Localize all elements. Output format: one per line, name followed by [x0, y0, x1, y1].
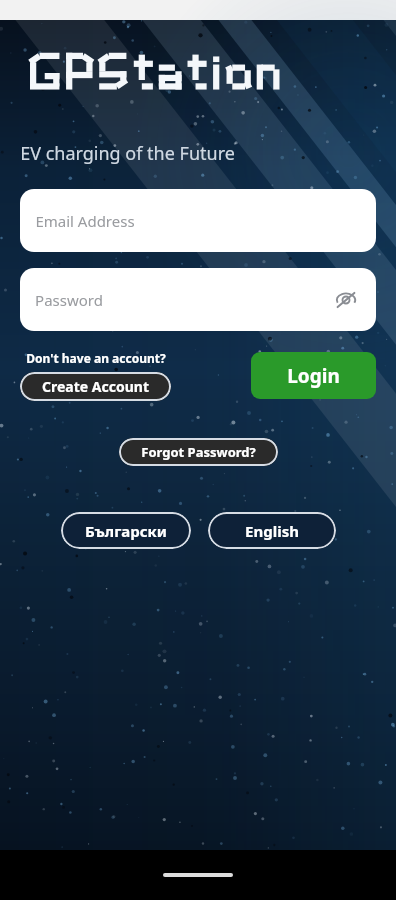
- staticText: Create Account: [42, 377, 149, 396]
- button[interactable]: Forgot Password?: [119, 438, 278, 466]
- staticText: Don't have an account?: [26, 350, 166, 366]
- button[interactable]: Create Account: [20, 372, 171, 401]
- button[interactable]: Show password: [331, 285, 361, 315]
- button[interactable]: English: [208, 512, 336, 549]
- button[interactable]: Български: [61, 512, 191, 549]
- button[interactable]: Login: [251, 352, 376, 399]
- staticText: Email Address: [35, 211, 135, 231]
- button[interactable]: Password: [20, 268, 376, 331]
- staticText: Forgot Password?: [141, 443, 256, 461]
- staticText: Password: [35, 290, 103, 310]
- staticText: Български: [85, 521, 167, 541]
- button[interactable]: Email Address: [20, 189, 376, 252]
- staticText: English: [245, 521, 299, 541]
- staticText: Login: [287, 363, 340, 389]
- staticText: EV charging of the Future: [20, 141, 235, 166]
